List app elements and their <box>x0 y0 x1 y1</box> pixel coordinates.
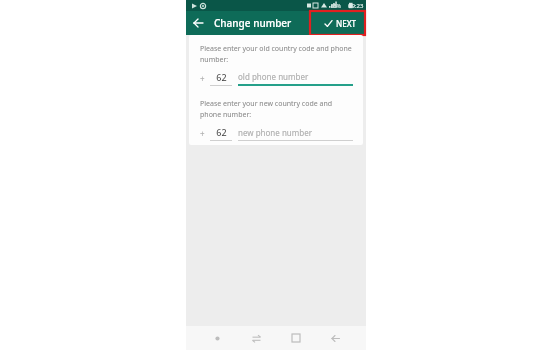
button[interactable]: 62 <box>210 126 232 141</box>
staticText: 62 <box>216 71 227 83</box>
staticText: Please enter your old country code and p… <box>200 44 353 64</box>
staticText: + <box>200 128 205 139</box>
staticText: 09:23 <box>348 2 364 10</box>
staticText: + <box>200 73 205 84</box>
button[interactable]: Back <box>186 11 210 35</box>
staticText: 62 <box>216 126 227 138</box>
button[interactable]: Home <box>287 329 305 347</box>
staticText: new phone number <box>238 127 313 138</box>
button[interactable]: Switch <box>247 329 265 347</box>
button[interactable]: Back <box>326 329 344 347</box>
staticText: 85% <box>331 3 341 10</box>
staticText: NEXT <box>336 18 357 29</box>
button[interactable]: Dot <box>208 329 226 347</box>
staticText: old phone number <box>238 71 309 82</box>
button[interactable]: old phone number <box>238 71 353 86</box>
staticText: Please enter your new country code and p… <box>200 99 353 119</box>
button[interactable]: NEXT <box>320 15 361 32</box>
button[interactable]: new phone number <box>238 127 353 141</box>
staticText: Change number <box>214 16 292 30</box>
button[interactable]: 62 <box>210 71 232 86</box>
